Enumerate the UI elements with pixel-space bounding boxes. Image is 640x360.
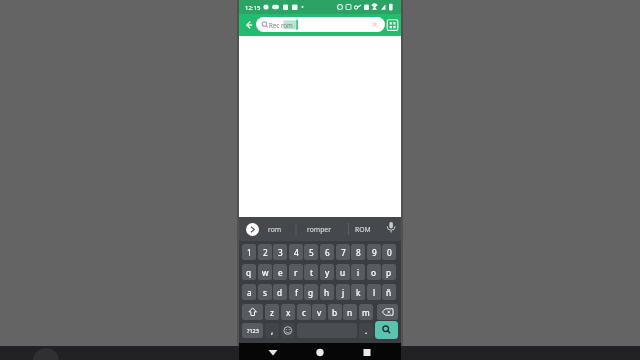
button[interactable]: m — [359, 304, 373, 320]
staticText: 4 — [294, 247, 299, 258]
button[interactable]: 0 — [382, 244, 396, 260]
button[interactable] — [241, 17, 254, 33]
button[interactable]: ROM — [345, 220, 381, 238]
button[interactable]: o — [367, 264, 381, 280]
button[interactable] — [377, 304, 398, 320]
staticText: 5 — [309, 247, 314, 258]
button[interactable] — [375, 321, 398, 339]
staticText: h — [324, 287, 330, 298]
staticText: 3 — [278, 247, 283, 258]
button[interactable]: x — [281, 304, 295, 320]
button[interactable]: t — [304, 264, 318, 280]
staticText: 6 — [325, 247, 330, 258]
button[interactable]: y — [320, 264, 334, 280]
staticText: b — [332, 307, 338, 318]
staticText: g — [308, 287, 314, 298]
button[interactable]: p — [382, 264, 396, 280]
staticText: y — [325, 267, 330, 278]
staticText: s — [263, 287, 267, 298]
button[interactable]: 2 — [258, 244, 272, 260]
button[interactable] — [359, 345, 375, 359]
staticText: 7 — [341, 247, 346, 258]
staticText: u — [340, 267, 346, 278]
staticText: l — [373, 287, 376, 298]
button[interactable]: ñ — [382, 284, 396, 300]
button[interactable]: , — [265, 323, 279, 338]
button[interactable]: q — [242, 264, 256, 280]
staticText: v — [317, 307, 322, 318]
staticText: 0 — [387, 247, 392, 258]
button[interactable]: k — [351, 284, 365, 300]
staticText: Rec rom — [269, 21, 293, 29]
staticText: romper — [307, 225, 331, 234]
staticText: r — [294, 267, 298, 278]
button[interactable]: 4 — [289, 244, 303, 260]
button[interactable]: r — [289, 264, 303, 280]
button[interactable]: rom — [257, 220, 293, 238]
button[interactable] — [385, 17, 400, 33]
button[interactable]: z — [265, 304, 279, 320]
button[interactable]: s — [258, 284, 272, 300]
button[interactable]: . — [359, 323, 373, 338]
staticText: x — [286, 307, 291, 318]
button[interactable]: ?123 — [242, 323, 263, 338]
staticText: , — [271, 325, 274, 336]
staticText: 12:15 — [245, 4, 261, 12]
button[interactable]: b — [328, 304, 342, 320]
staticText: w — [262, 267, 269, 278]
staticText: f — [295, 287, 298, 298]
staticText: a — [247, 287, 252, 298]
button[interactable]: i — [351, 264, 365, 280]
staticText: e — [278, 267, 283, 278]
staticText: 8 — [356, 247, 361, 258]
button[interactable] — [281, 323, 295, 338]
button[interactable]: d — [273, 284, 287, 300]
staticText: i — [357, 267, 360, 278]
staticText: k — [356, 287, 361, 298]
staticText: 9 — [372, 247, 377, 258]
staticText: q — [246, 267, 252, 278]
button[interactable]: 3 — [273, 244, 287, 260]
button[interactable] — [242, 304, 263, 320]
staticText: d — [277, 287, 283, 298]
button[interactable]: w — [258, 264, 272, 280]
button[interactable]: h — [320, 284, 334, 300]
button[interactable]: f — [289, 284, 303, 300]
staticText: rom — [268, 225, 282, 234]
staticText: 2 — [263, 247, 268, 258]
button[interactable]: 6 — [320, 244, 334, 260]
button[interactable]: Rec rom — [256, 17, 385, 32]
staticText: 1 — [247, 247, 252, 258]
button[interactable]: 7 — [336, 244, 350, 260]
button[interactable]: e — [273, 264, 287, 280]
staticText: ñ — [386, 287, 392, 298]
button[interactable]: 9 — [367, 244, 381, 260]
staticText: c — [302, 307, 306, 318]
button[interactable]: 5 — [304, 244, 318, 260]
button[interactable] — [265, 345, 281, 359]
staticText: . — [365, 325, 368, 336]
button[interactable]: u — [336, 264, 350, 280]
staticText: n — [347, 307, 353, 318]
button[interactable] — [312, 345, 328, 359]
staticText: p — [386, 267, 392, 278]
staticText: o — [371, 267, 377, 278]
staticText: t — [310, 267, 313, 278]
button[interactable]: j — [336, 284, 350, 300]
button[interactable]: 8 — [351, 244, 365, 260]
button[interactable]: 1 — [242, 244, 256, 260]
staticText: ROM — [355, 225, 371, 234]
button[interactable]: v — [312, 304, 326, 320]
button[interactable]: g — [304, 284, 318, 300]
button[interactable]: n — [343, 304, 357, 320]
staticText: z — [270, 307, 274, 318]
button[interactable]: l — [367, 284, 381, 300]
staticText: j — [342, 287, 345, 298]
staticText: ?123 — [247, 327, 259, 334]
staticText: m — [362, 307, 370, 318]
button[interactable]: romper — [297, 220, 340, 238]
button[interactable] — [246, 223, 259, 236]
button[interactable]: a — [242, 284, 256, 300]
button[interactable]: c — [297, 304, 311, 320]
